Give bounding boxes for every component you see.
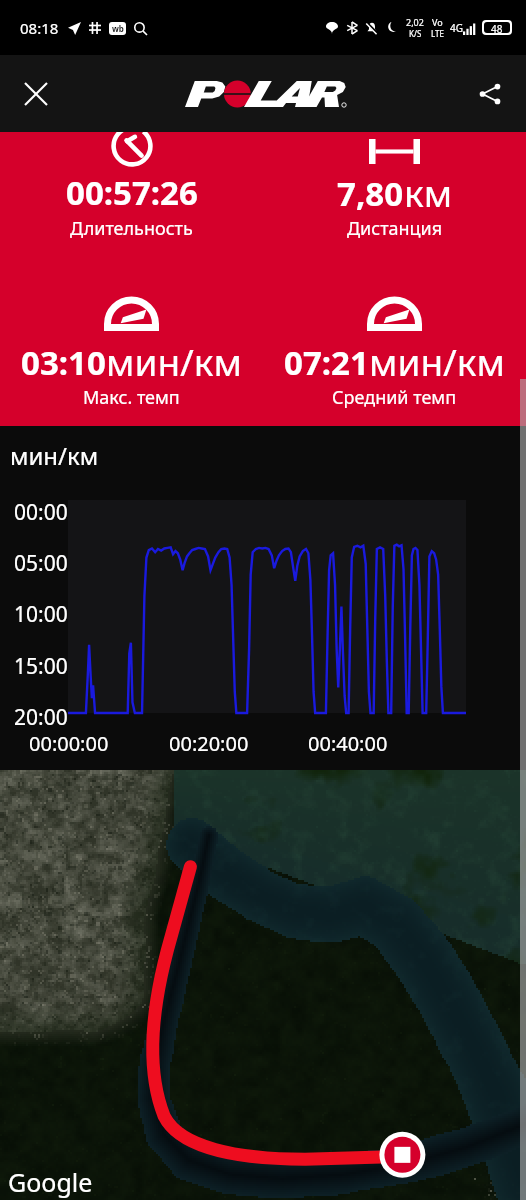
staticText: 2,02 <box>406 16 424 28</box>
staticText: Длительность <box>70 216 193 241</box>
staticText: км <box>404 167 453 217</box>
staticText: Google <box>8 1165 93 1199</box>
staticText: 48 <box>491 22 503 33</box>
staticText: мин/км <box>10 439 99 472</box>
staticText: 10:00 <box>14 600 68 629</box>
staticText: 00:00 <box>14 498 68 527</box>
staticText: Средний темп <box>332 385 457 410</box>
staticText: Дистанция <box>347 216 443 241</box>
staticText: мин/км <box>369 336 505 386</box>
staticText: 00:20:00 <box>169 730 249 757</box>
staticText: 07:21 <box>284 340 369 385</box>
staticText: 00:40:00 <box>308 730 388 757</box>
staticText: 08:18 <box>20 18 59 38</box>
staticText: 00:57:26 <box>66 170 198 215</box>
staticText: 7,80 <box>337 171 404 216</box>
button[interactable]: Close <box>12 70 60 118</box>
staticText: 03:10 <box>21 340 106 385</box>
staticText: Vo <box>432 16 443 28</box>
staticText: 00:00:00 <box>29 730 109 757</box>
staticText: wb <box>112 23 124 34</box>
staticText: LTE <box>431 28 444 39</box>
staticText: мин/км <box>106 336 242 386</box>
button[interactable]: Share <box>466 70 514 118</box>
staticText: 05:00 <box>14 549 68 578</box>
staticText: Макс. темп <box>83 385 180 410</box>
staticText: 20:00 <box>14 703 68 732</box>
staticText: 4G <box>450 21 463 35</box>
staticText: K/S <box>409 28 422 39</box>
staticText: 15:00 <box>14 652 68 681</box>
